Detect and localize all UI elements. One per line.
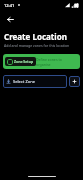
staticText: Define zones to organise xyxy=(36,57,76,67)
staticText: Zone Setup xyxy=(14,59,34,64)
staticText: Add and manage zones for this location xyxy=(4,43,70,48)
button[interactable]: Select Zone xyxy=(3,75,67,88)
button[interactable]: Zone Setup xyxy=(3,54,80,69)
staticText: Create Location xyxy=(4,31,67,42)
staticText: 12:41 xyxy=(4,3,15,8)
button[interactable]: Add zone xyxy=(69,76,80,87)
button[interactable]: Back xyxy=(3,12,17,26)
staticText: Select Zone xyxy=(13,79,35,84)
